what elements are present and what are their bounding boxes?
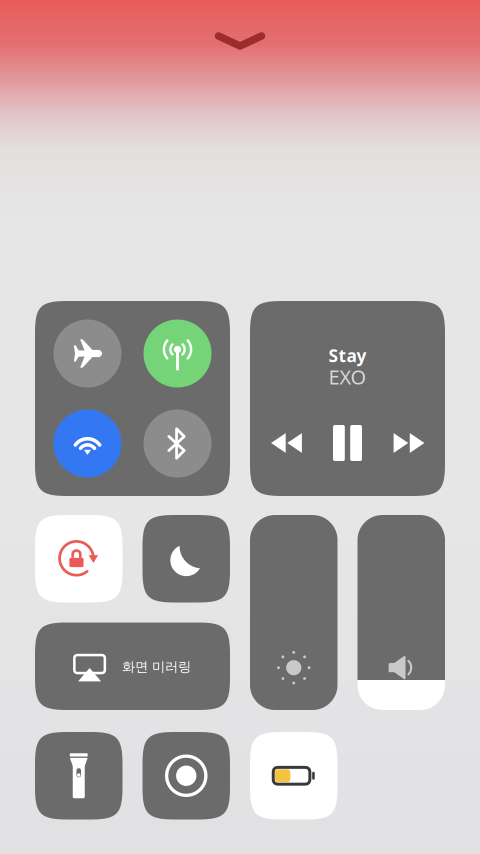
button[interactable]: Volume: [357, 515, 445, 710]
button[interactable]: Low Power Mode: [250, 732, 337, 819]
staticText: 화면 미러링: [122, 658, 191, 675]
staticText: Stay: [328, 344, 366, 367]
button[interactable]: Do Not Disturb: [142, 515, 230, 602]
button[interactable]: Camera: [142, 732, 230, 819]
button[interactable]: Stay: [250, 301, 445, 496]
button[interactable]: Rotation Lock: [35, 515, 122, 602]
button[interactable]: Brightness: [250, 515, 337, 710]
button[interactable]: Flashlight: [35, 732, 122, 819]
button[interactable]: Cellular Data: [143, 319, 211, 387]
button[interactable]: Airplane Mode: [53, 319, 121, 387]
button[interactable]: 화면 미러링: [35, 622, 230, 710]
button[interactable]: Bluetooth: [143, 409, 211, 477]
button[interactable]: Wi-Fi: [53, 409, 121, 477]
staticText: EXO: [328, 363, 366, 390]
